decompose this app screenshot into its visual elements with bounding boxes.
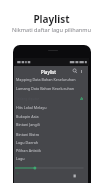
staticText: Bintani Bistro <box>16 132 40 137</box>
staticText: Pilihan Artistik <box>16 148 41 153</box>
button[interactable]: Bukopin Asia <box>14 112 88 120</box>
button[interactable]: Mapping Data Bahan Keseluruhan <box>14 75 88 83</box>
button[interactable]: More options <box>79 69 84 74</box>
other: Now playing <box>80 97 83 100</box>
button[interactable]: Search <box>72 68 78 74</box>
staticText: Mapping Data Bahan Keseluruhan <box>16 77 76 82</box>
button[interactable]: Lagu <box>14 154 88 162</box>
button[interactable]: Lagu Daerah <box>14 138 88 146</box>
button[interactable]: Bintani Bistro <box>14 130 88 138</box>
button[interactable]: Hits Lokal Melayu <box>14 103 88 111</box>
button[interactable]: Playlist <box>14 66 88 76</box>
staticText: Lagu Daerah <box>16 140 39 145</box>
button[interactable]: Lamang Data Bahan Keseluruhan <box>14 84 88 92</box>
staticText: Nikmati daftar lagu pilihanmu <box>0 26 103 34</box>
button[interactable]: Bintani Jangili <box>14 120 88 128</box>
staticText: Bintani Jangili <box>16 122 40 127</box>
staticText: Bukopin Asia <box>16 114 39 119</box>
button[interactable] <box>14 165 88 171</box>
staticText: Hits Lokal Melayu <box>16 105 47 110</box>
button[interactable]: Pilihan Artistik <box>14 146 88 154</box>
staticText: Lamang Data Bahan Keseluruhan <box>16 86 75 91</box>
staticText: Lagu <box>16 156 25 161</box>
staticText: Playlist <box>0 12 103 26</box>
staticText: Playlist <box>41 69 56 75</box>
button[interactable]: Sedang diputar <box>14 96 88 103</box>
